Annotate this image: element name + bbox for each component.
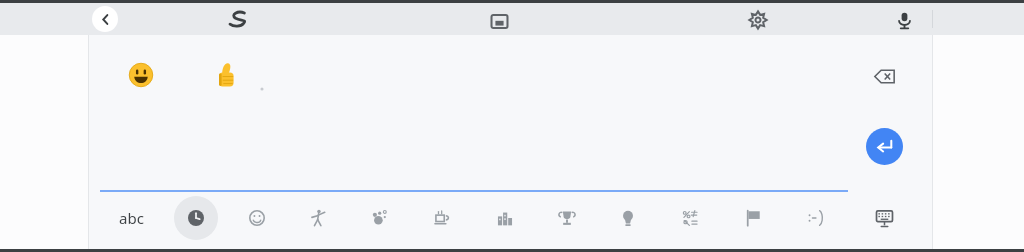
button[interactable]: Flags bbox=[735, 200, 771, 236]
button[interactable]: Activities bbox=[549, 200, 585, 236]
button[interactable]: Smileys and emotion bbox=[239, 200, 275, 236]
button[interactable]: Symbols bbox=[672, 200, 708, 236]
button[interactable]: Handwriting bbox=[224, 5, 252, 33]
button[interactable]: Travel and places bbox=[487, 200, 523, 236]
button[interactable]: Voice input bbox=[890, 6, 918, 34]
button[interactable]: Back bbox=[92, 6, 118, 32]
button[interactable] bbox=[209, 59, 241, 91]
button[interactable]: abc bbox=[108, 202, 154, 234]
button[interactable] bbox=[126, 60, 156, 90]
button[interactable]: Switch keyboard bbox=[866, 200, 902, 236]
button[interactable]: Recently used bbox=[174, 196, 218, 240]
button[interactable]: Backspace bbox=[864, 56, 904, 96]
button[interactable]: Animals and nature bbox=[362, 200, 398, 236]
button[interactable]: Settings bbox=[744, 6, 772, 34]
button[interactable]: Stickers bbox=[485, 7, 513, 35]
button[interactable]: Enter bbox=[866, 128, 903, 165]
button[interactable]: People and body bbox=[300, 200, 336, 236]
staticText: abc bbox=[119, 208, 144, 228]
button[interactable]: Emoticons bbox=[797, 200, 833, 236]
button[interactable]: Food and drink bbox=[424, 200, 460, 236]
button[interactable]: Objects bbox=[610, 200, 646, 236]
